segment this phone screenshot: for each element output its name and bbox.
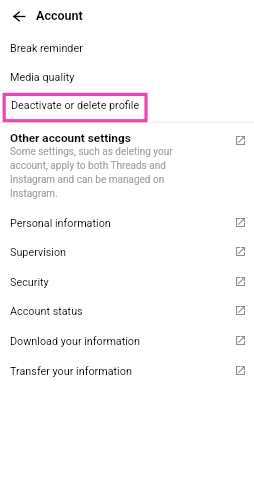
staticText: Supervision <box>10 246 236 259</box>
button[interactable]: Security <box>0 267 254 297</box>
button[interactable]: Download your information <box>0 326 254 356</box>
staticText: Some settings, such as deleting your acc… <box>10 146 190 199</box>
button[interactable]: Back <box>10 7 28 25</box>
button[interactable]: Account status <box>0 296 254 326</box>
staticText: Deactivate or delete profile <box>11 99 140 112</box>
staticText: Media quality <box>10 71 75 84</box>
button[interactable]: Break reminder <box>0 33 254 63</box>
staticText: Account status <box>10 305 236 318</box>
button[interactable]: Media quality <box>0 62 254 92</box>
button[interactable]: Personal information <box>0 208 254 238</box>
button[interactable]: Transfer your information <box>0 356 254 386</box>
staticText: Security <box>10 276 236 289</box>
button[interactable]: Deactivate or delete profile <box>4 92 147 119</box>
staticText: Personal information <box>10 217 236 230</box>
staticText: Download your information <box>10 335 236 348</box>
button[interactable]: Other account settings <box>0 128 254 199</box>
staticText: Transfer your information <box>10 365 236 378</box>
staticText: Account <box>36 8 83 23</box>
staticText: Break reminder <box>10 42 83 55</box>
staticText: Other account settings <box>10 131 131 145</box>
button[interactable]: Supervision <box>0 237 254 267</box>
